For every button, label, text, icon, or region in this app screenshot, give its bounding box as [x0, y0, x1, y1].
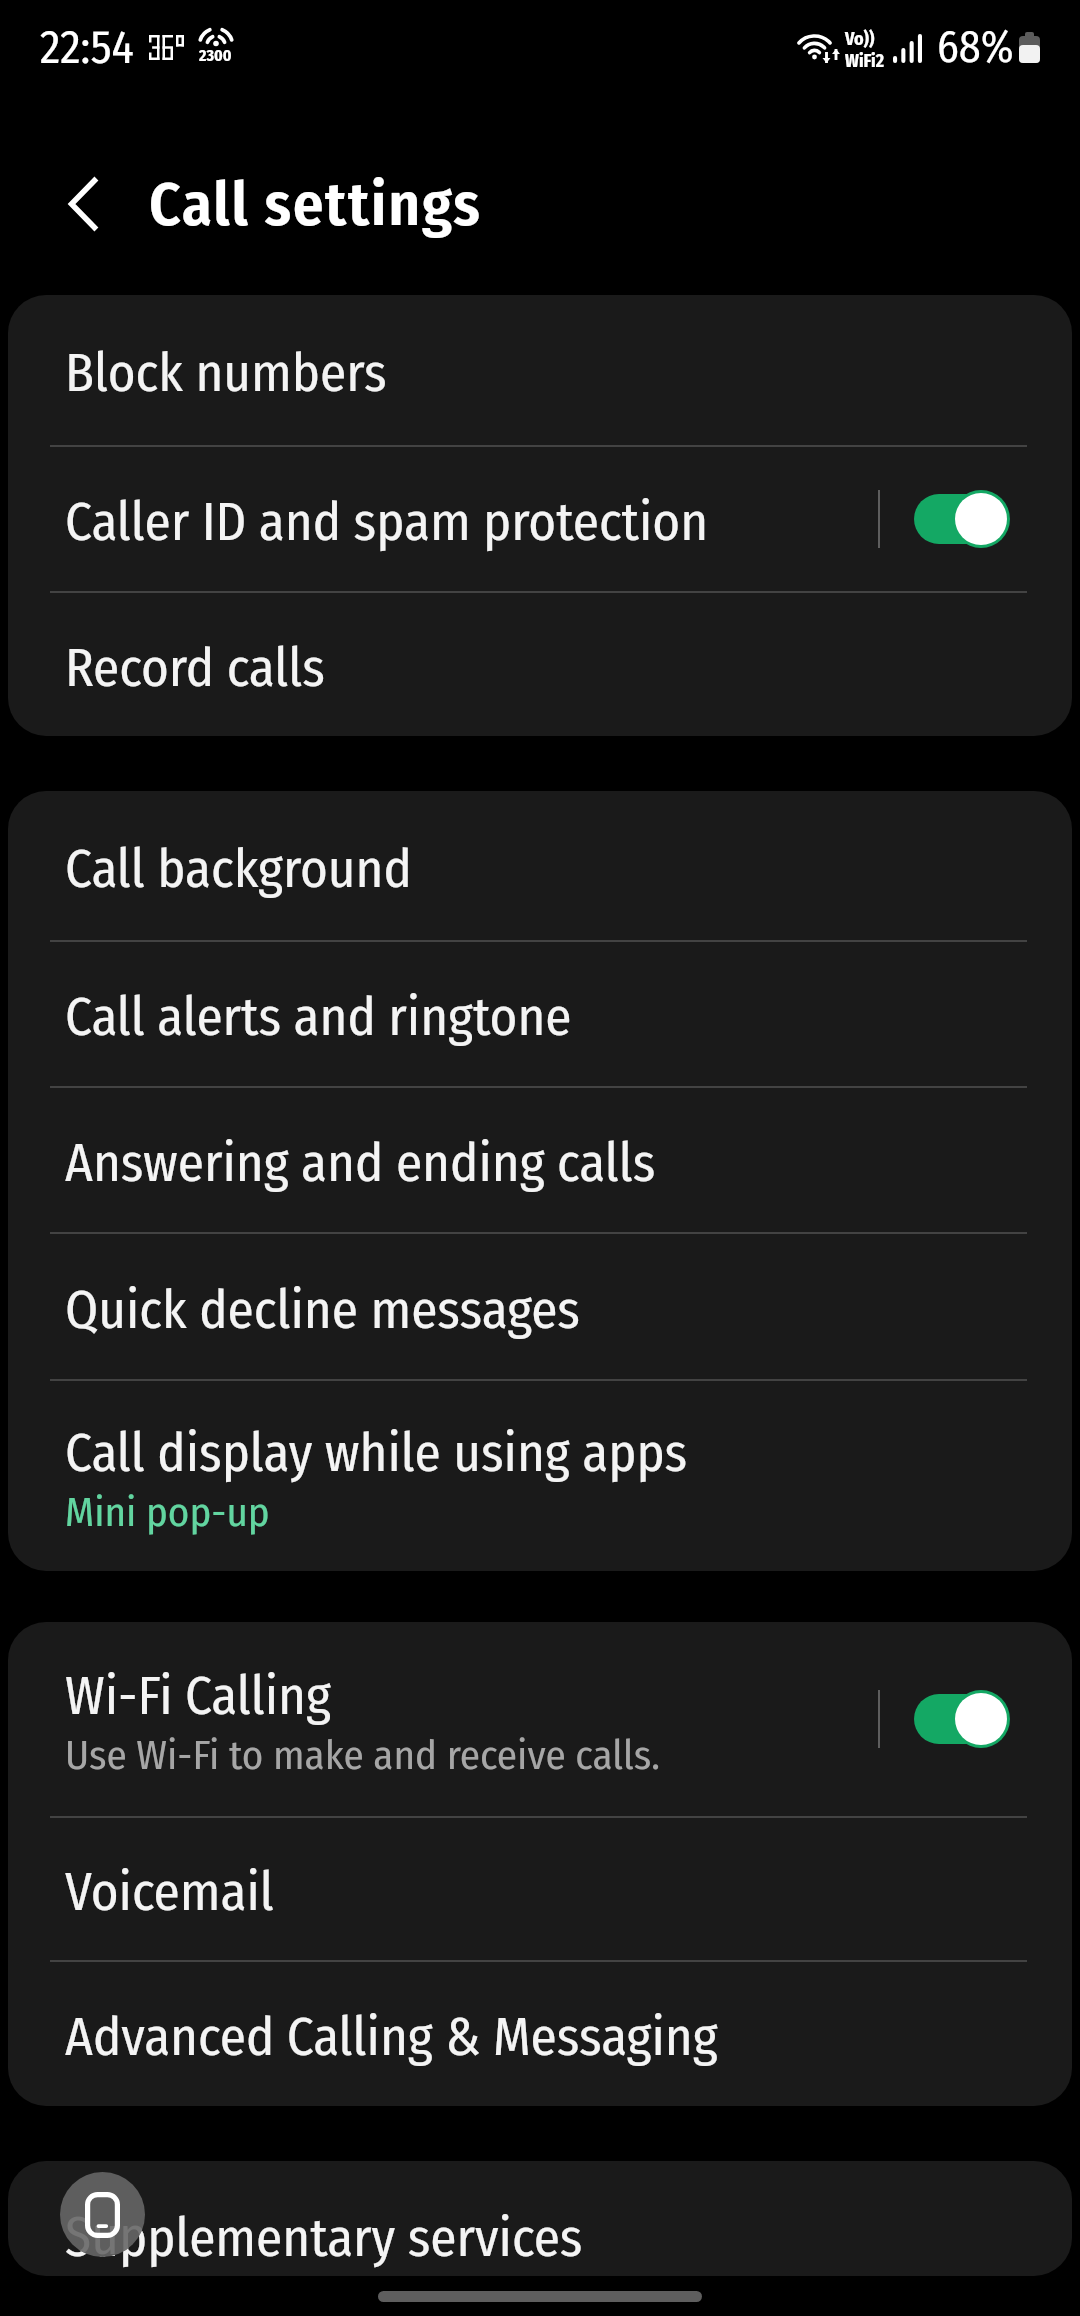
staticText: Mini pop-up [65, 1488, 270, 1537]
staticText: Block numbers [65, 341, 387, 405]
staticText: Use Wi-Fi to make and receive calls. [65, 1731, 661, 1780]
button[interactable]: Block numbers [8, 295, 1072, 445]
staticText: Advanced Calling & Messaging [65, 2005, 718, 2069]
button[interactable]: Toggle on [914, 489, 1010, 549]
button[interactable]: Voicemail [8, 1818, 1072, 1960]
button[interactable]: Caller ID and spam protection [8, 447, 1072, 591]
staticText: Call settings [149, 168, 482, 241]
button[interactable]: Toggle on [914, 1689, 1010, 1749]
button[interactable]: Record calls [8, 593, 1072, 736]
button[interactable]: Call display while using apps [8, 1381, 1072, 1571]
button[interactable]: Advanced Calling & Messaging [8, 1962, 1072, 2106]
button[interactable]: Supplementary services [8, 2161, 1072, 2276]
staticText: Call background [65, 837, 412, 901]
button[interactable]: Quick decline messages [8, 1234, 1072, 1379]
button[interactable]: Quick access [60, 2172, 145, 2257]
staticText: 2300 [199, 46, 232, 65]
staticText: Call alerts and ringtone [65, 985, 572, 1049]
staticText: Call display while using apps [65, 1421, 688, 1485]
button[interactable]: Wi-Fi Calling [8, 1622, 1072, 1816]
staticText: Wi-Fi Calling [65, 1664, 331, 1728]
staticText: Answering and ending calls [65, 1131, 656, 1195]
staticText: Caller ID and spam protection [65, 490, 709, 554]
staticText: Supplementary services [65, 2204, 145, 2257]
button[interactable]: Answering and ending calls [8, 1088, 1072, 1232]
staticText: 22:54 [40, 20, 134, 75]
staticText: Voicemail [65, 1860, 274, 1924]
staticText: 68% [937, 21, 1014, 74]
button[interactable]: Back [38, 159, 128, 249]
staticText: Record calls [65, 636, 325, 700]
staticText: Supplementary services [65, 2206, 583, 2270]
staticText: Vo)) [845, 28, 875, 50]
staticText: Quick decline messages [65, 1278, 581, 1342]
staticText: WiFi2 [845, 50, 885, 68]
button[interactable]: Call background [8, 791, 1072, 940]
button[interactable]: Call alerts and ringtone [8, 942, 1072, 1086]
